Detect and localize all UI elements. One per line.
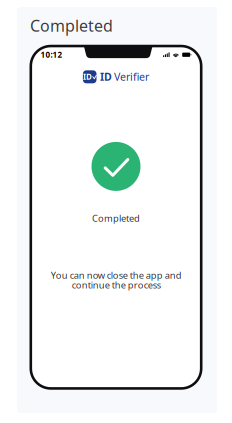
staticText: continue the process bbox=[71, 279, 160, 291]
staticText: Verifier bbox=[114, 69, 149, 84]
staticText: You can now close the app and bbox=[50, 269, 181, 281]
staticText: ID bbox=[83, 71, 92, 82]
staticText: 10:12 bbox=[40, 49, 62, 60]
staticText: Completed bbox=[92, 212, 140, 224]
staticText: Completed bbox=[30, 15, 113, 36]
staticText: ID bbox=[100, 69, 112, 84]
